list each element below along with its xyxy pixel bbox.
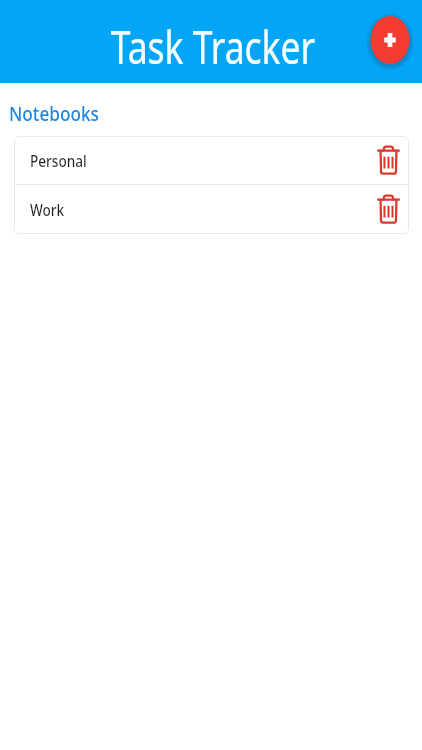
- staticText: Notebooks: [9, 100, 99, 127]
- staticText: Work: [30, 198, 65, 221]
- button[interactable]: Add notebook: [365, 10, 415, 70]
- button[interactable]: Personal: [14, 136, 409, 184]
- button[interactable]: Work: [14, 185, 409, 233]
- staticText: Task Tracker: [2, 15, 422, 77]
- button[interactable]: Delete Personal: [368, 137, 409, 183]
- staticText: Personal: [30, 149, 87, 172]
- button[interactable]: Delete Work: [368, 186, 409, 232]
